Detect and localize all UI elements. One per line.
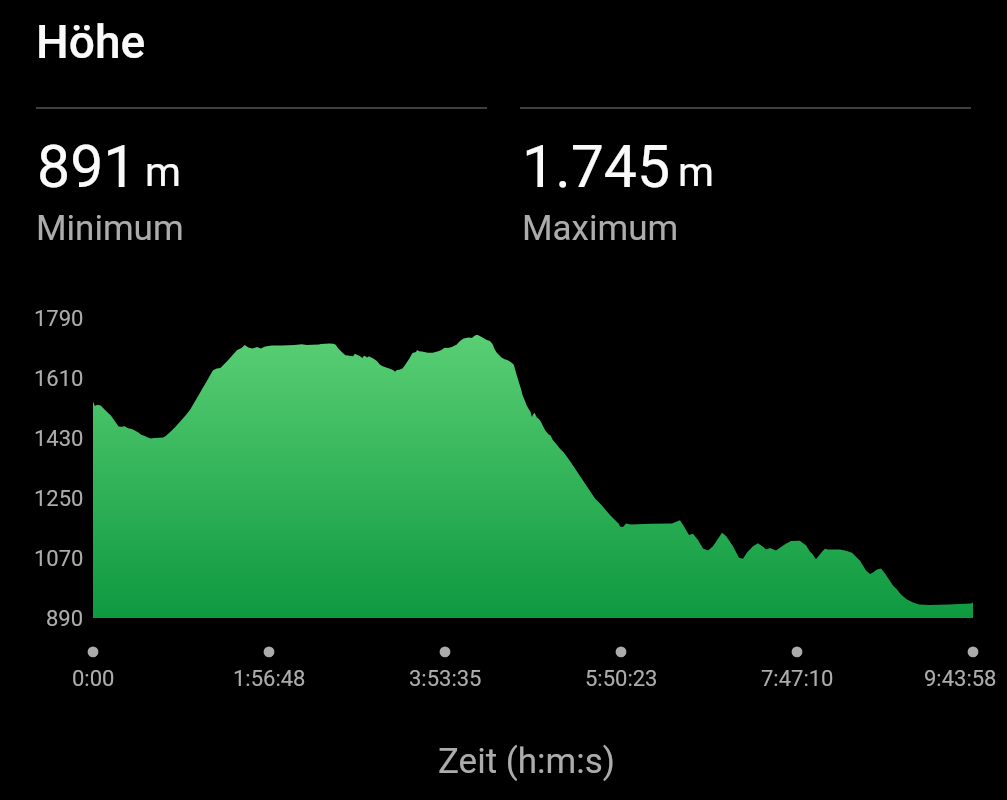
button[interactable]: Minimum altitude 891 m <box>36 108 487 250</box>
staticText: m <box>678 148 714 196</box>
button[interactable]: Maximum altitude 1.745 m <box>520 108 971 250</box>
staticText: 1790 <box>34 306 84 332</box>
staticText: 890 <box>46 606 84 632</box>
staticText: 5:50:23 <box>585 666 658 692</box>
staticText: 1610 <box>34 366 84 392</box>
staticText: Zeit (h:m:s) <box>438 741 615 782</box>
staticText: 7:47:10 <box>761 666 834 692</box>
button[interactable]: Altitude over time chart <box>93 300 973 652</box>
staticText: Höhe <box>36 15 146 69</box>
staticText: m <box>145 148 181 196</box>
staticText: 9:43:58 <box>924 666 997 692</box>
staticText: 0:00 <box>72 666 115 692</box>
staticText: 1250 <box>34 486 84 512</box>
staticText: 1430 <box>34 426 84 452</box>
staticText: 1070 <box>34 546 84 572</box>
staticText: 891 <box>37 132 137 201</box>
staticText: 3:53:35 <box>409 666 482 692</box>
staticText: Minimum <box>36 208 184 249</box>
staticText: Maximum <box>522 208 679 249</box>
staticText: 1:56:48 <box>233 666 306 692</box>
staticText: 1.745 <box>522 132 671 201</box>
